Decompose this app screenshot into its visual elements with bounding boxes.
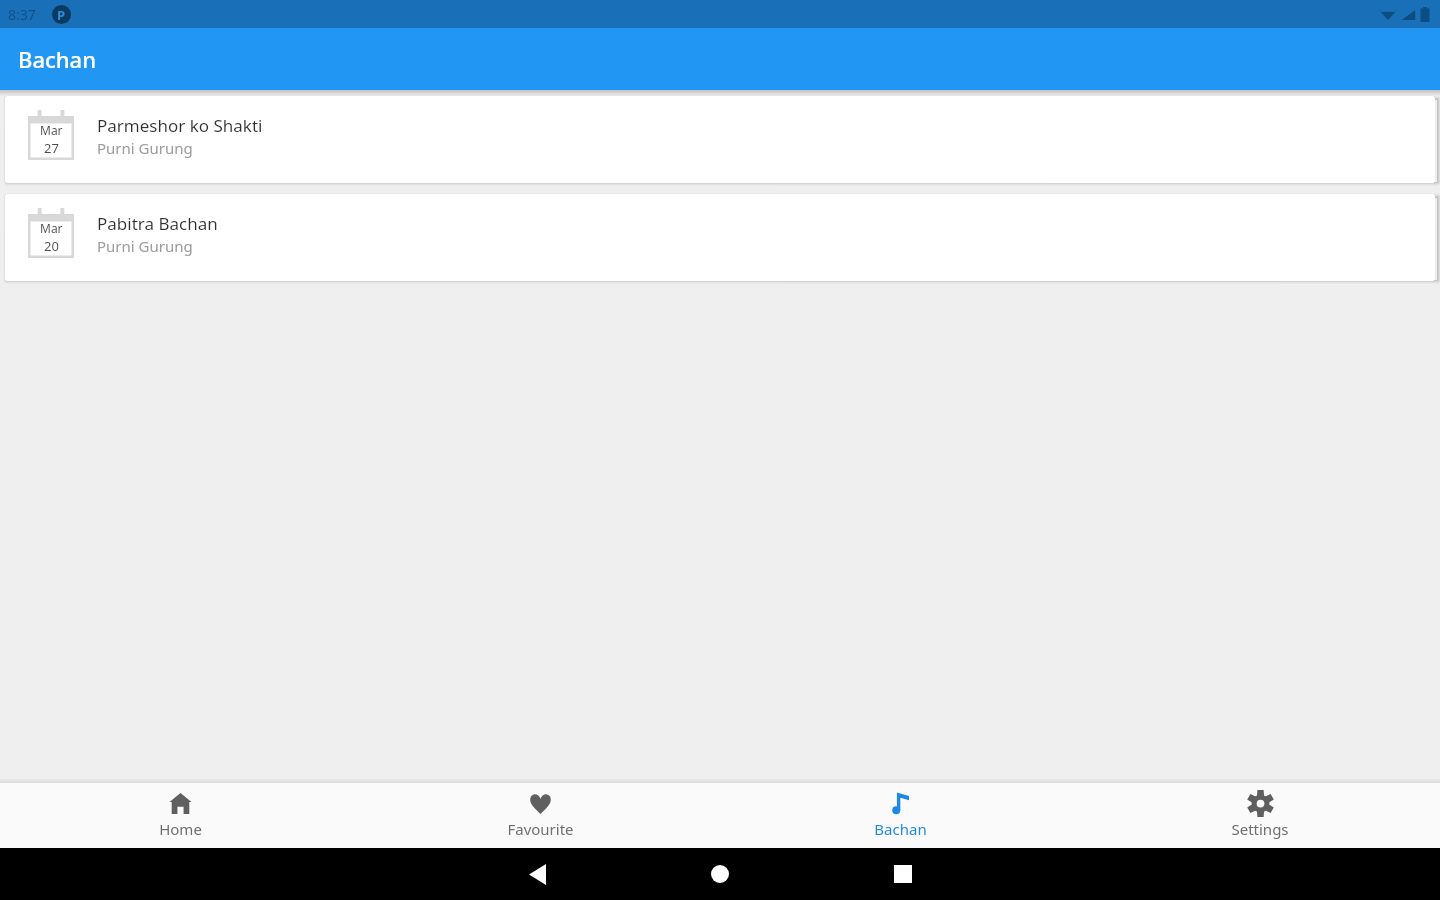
button[interactable]: Home bbox=[0, 783, 360, 848]
staticText: Bachan bbox=[874, 819, 927, 839]
staticText: Mar bbox=[40, 122, 63, 138]
staticText: Home bbox=[159, 819, 202, 839]
staticText: 20 bbox=[44, 237, 59, 255]
staticText: 8:37 bbox=[8, 5, 36, 24]
button[interactable]: Settings bbox=[1080, 783, 1440, 848]
staticText: Pabitra Bachan bbox=[97, 212, 218, 235]
staticText: 27 bbox=[44, 139, 59, 157]
staticText: Purni Gurung bbox=[97, 236, 193, 256]
staticText: Mar bbox=[40, 220, 63, 236]
staticText: Purni Gurung bbox=[97, 138, 193, 158]
button[interactable]: Mar bbox=[5, 194, 1435, 281]
staticText: Bachan bbox=[18, 44, 96, 74]
staticText: Parmeshor ko Shakti bbox=[97, 114, 263, 137]
staticText: Favourite bbox=[507, 819, 574, 839]
staticText: P bbox=[57, 6, 66, 24]
button[interactable]: Mar bbox=[5, 96, 1435, 183]
button[interactable]: Bachan bbox=[720, 783, 1080, 848]
button[interactable]: Recent apps bbox=[867, 848, 939, 900]
button[interactable]: Back bbox=[501, 848, 573, 900]
staticText: Settings bbox=[1231, 819, 1289, 839]
button[interactable]: Favourite bbox=[360, 783, 720, 848]
button[interactable]: Home bbox=[684, 848, 756, 900]
